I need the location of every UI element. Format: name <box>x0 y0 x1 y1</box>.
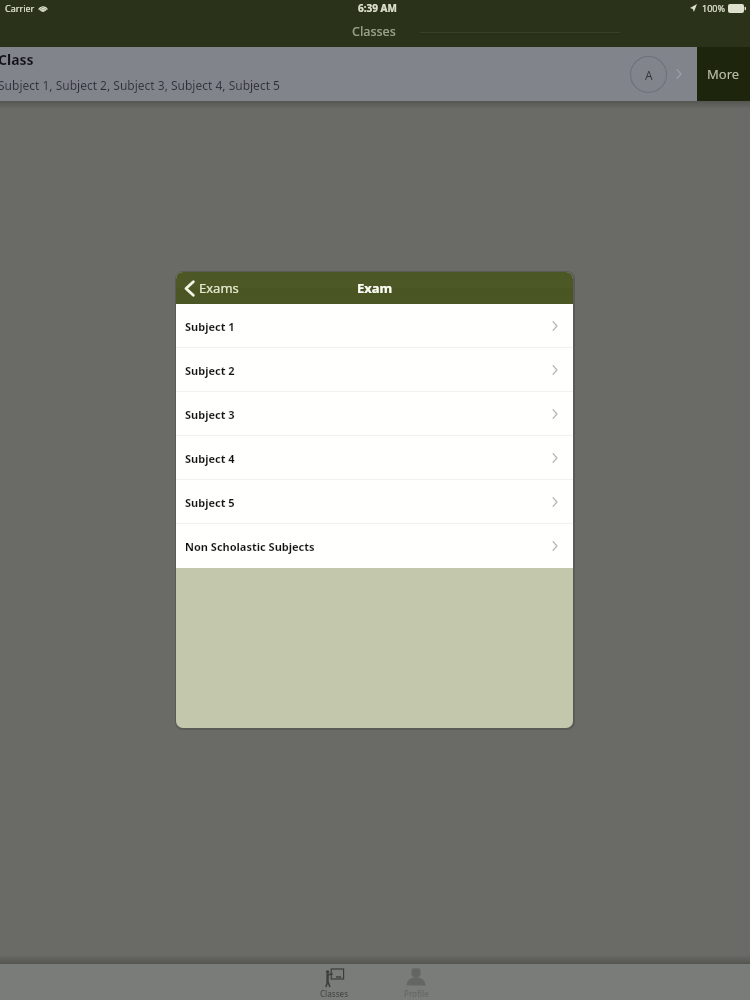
staticText: Subject 1 <box>185 319 235 334</box>
button[interactable]: Subject 3 <box>176 392 573 436</box>
staticText: A <box>645 67 653 83</box>
staticText: Classes <box>320 988 349 999</box>
staticText: Subject 4 <box>185 451 235 466</box>
button[interactable]: Subject 4 <box>176 436 573 480</box>
staticText: Carrier <box>5 2 35 14</box>
staticText: More <box>707 65 740 83</box>
button[interactable]: Subject 1 <box>176 304 573 348</box>
button[interactable]: Class <box>0 47 697 101</box>
button[interactable]: Profile <box>387 964 445 1000</box>
button[interactable]: Class avatar A <box>630 56 667 93</box>
staticText: Non Scholastic Subjects <box>185 539 315 554</box>
button[interactable]: Subject 2 <box>176 348 573 392</box>
staticText: Profile <box>404 988 429 999</box>
staticText: Exam <box>357 279 393 297</box>
button[interactable]: More <box>697 47 750 101</box>
staticText: Subject 2 <box>185 363 235 378</box>
staticText: Exams <box>199 279 239 297</box>
button[interactable]: Non Scholastic Subjects <box>176 524 573 568</box>
staticText: Classes <box>352 23 396 40</box>
button[interactable]: Classes <box>305 964 363 1000</box>
button[interactable]: Exams <box>184 279 239 297</box>
staticText: Class <box>0 50 34 69</box>
button[interactable]: Subject 5 <box>176 480 573 524</box>
staticText: Subject 1, Subject 2, Subject 3, Subject… <box>0 77 280 93</box>
staticText: Subject 3 <box>185 407 235 422</box>
staticText: 6:39 AM <box>358 1 397 15</box>
staticText: 100% <box>702 2 725 14</box>
staticText: Subject 5 <box>185 495 235 510</box>
